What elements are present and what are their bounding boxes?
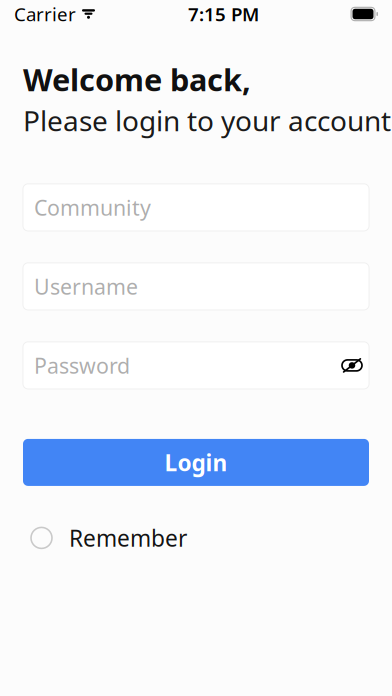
button[interactable]: Show password [335,342,369,389]
staticText: Remember [69,523,187,553]
staticText: 7:15 PM [188,2,259,26]
staticText: Password [34,351,130,379]
staticText: Welcome back, [23,59,251,100]
staticText: Login [164,447,227,477]
staticText: Carrier [14,2,76,26]
staticText: Please login to your account [23,102,391,139]
staticText: Community [34,193,151,221]
button[interactable]: Remember [0,518,392,558]
button[interactable]: Login [23,439,369,486]
staticText: Username [34,272,138,300]
